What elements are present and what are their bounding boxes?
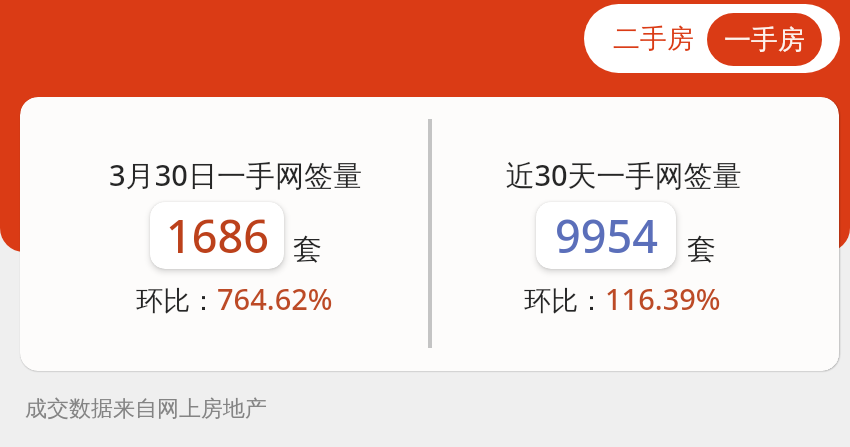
staticText: 一手房 [724, 23, 805, 57]
staticText: 116.39% [605, 279, 721, 318]
staticText: 环比： [136, 284, 217, 318]
staticText: 二手房 [613, 22, 694, 56]
staticText: 套 [293, 231, 322, 268]
staticText: 1686 [166, 205, 269, 266]
staticText: 套 [687, 231, 716, 268]
staticText: 近30天一手网签量 [505, 155, 742, 195]
staticText: 环比： [524, 284, 605, 318]
staticText: 3月30日一手网签量 [109, 155, 362, 195]
button[interactable]: 3月30日一手网签量 [20, 97, 839, 371]
staticText: 成交数据来自网上房地产 [25, 395, 267, 423]
button[interactable]: 一手房 [707, 13, 822, 66]
staticText: 9954 [555, 205, 658, 266]
staticText: 764.62% [217, 279, 333, 318]
button[interactable]: 二手房 [591, 4, 716, 73]
